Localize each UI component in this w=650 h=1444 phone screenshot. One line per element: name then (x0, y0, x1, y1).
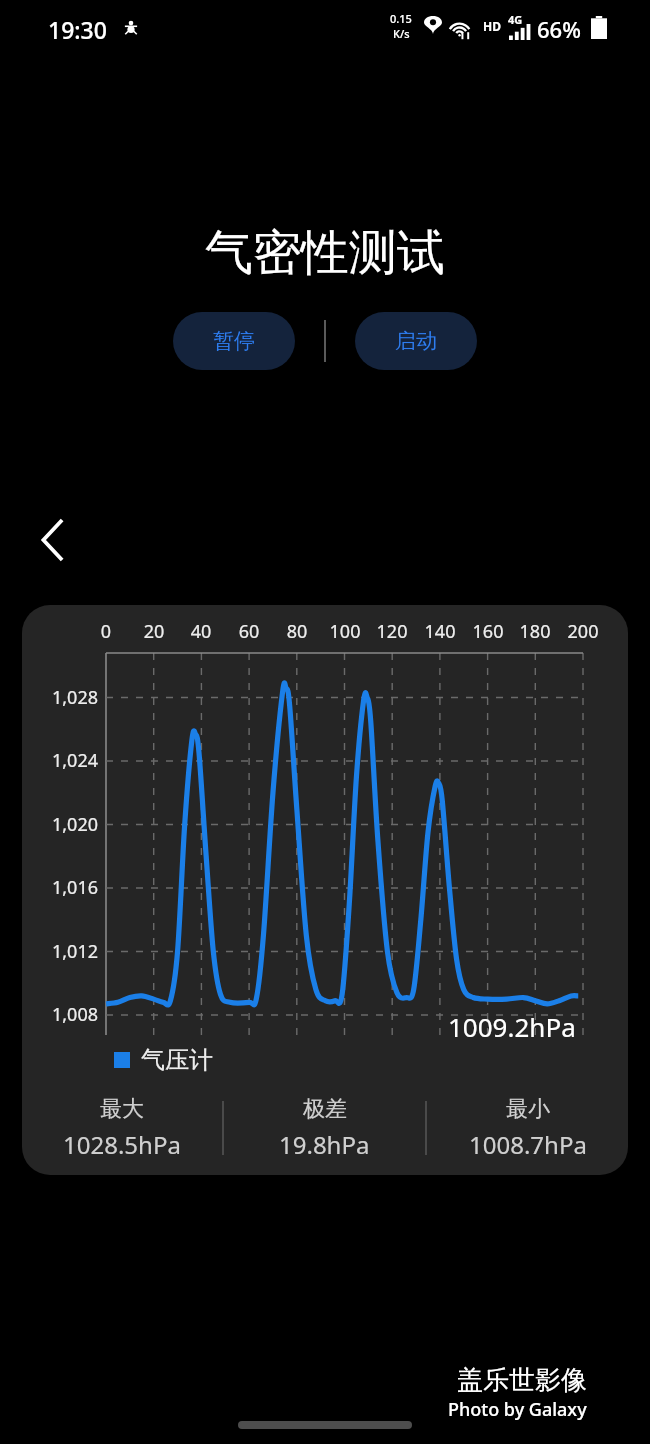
staticText: 1008.7hPa (469, 1128, 587, 1161)
staticText: 0 (82, 619, 130, 644)
button[interactable]: 极差 (224, 1095, 425, 1161)
button[interactable]: 最小 (427, 1095, 628, 1161)
staticText: 1,020 (26, 812, 98, 837)
staticText: 19:30 (48, 14, 107, 45)
button[interactable]: Back (22, 505, 84, 575)
staticText: 气密性测试 (0, 223, 650, 283)
staticText: 启动 (395, 328, 437, 354)
staticText: 最大 (100, 1095, 144, 1123)
staticText: 66% (537, 14, 581, 44)
staticText: 暂停 (213, 328, 255, 354)
button[interactable]: 启动 (355, 312, 477, 370)
staticText: 100 (321, 619, 369, 644)
staticText: 盖乐世影像 (457, 1364, 587, 1397)
staticText: HD (483, 18, 501, 34)
staticText: K/s (393, 26, 410, 41)
staticText: 4G (508, 12, 523, 27)
staticText: 极差 (303, 1095, 347, 1123)
staticText: 19.8hPa (279, 1128, 370, 1161)
staticText: 1,024 (26, 748, 98, 773)
staticText: 120 (368, 619, 416, 644)
staticText: 1,016 (26, 875, 98, 900)
staticText: 180 (511, 619, 559, 644)
staticText: 200 (559, 619, 607, 644)
button[interactable]: 0 (22, 605, 628, 1175)
staticText: Photo by Galaxy (448, 1397, 587, 1422)
staticText: 1028.5hPa (63, 1128, 181, 1161)
staticText: 0.15 (390, 11, 412, 26)
button[interactable]: 最大 (22, 1095, 222, 1161)
staticText: 140 (416, 619, 464, 644)
staticText: 1,028 (26, 685, 98, 710)
staticText: 20 (130, 619, 178, 644)
staticText: 1,008 (26, 1002, 98, 1027)
staticText: 1,012 (26, 939, 98, 964)
button[interactable]: 暂停 (173, 312, 295, 370)
staticText: 80 (273, 619, 321, 644)
staticText: 最小 (506, 1095, 550, 1123)
staticText: 气压计 (141, 1045, 213, 1075)
staticText: 160 (464, 619, 512, 644)
staticText: 1009.2hPa (448, 1009, 576, 1044)
staticText: 60 (225, 619, 273, 644)
staticText: 40 (177, 619, 225, 644)
